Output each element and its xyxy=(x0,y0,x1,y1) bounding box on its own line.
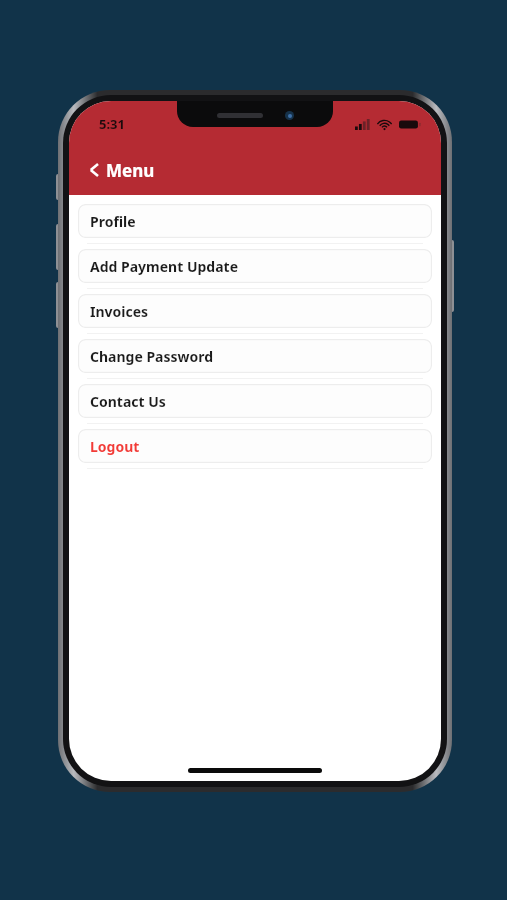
staticText: Contact Us xyxy=(90,392,166,411)
button[interactable]: Menu xyxy=(89,145,155,195)
other: Battery xyxy=(399,119,421,130)
staticText: Change Password xyxy=(90,347,214,366)
button[interactable]: Logout xyxy=(78,429,432,463)
button[interactable]: Contact Us xyxy=(78,384,432,418)
staticText: Profile xyxy=(90,212,136,231)
staticText: Add Payment Update xyxy=(90,257,239,276)
other: Cellular signal xyxy=(355,119,370,130)
button[interactable]: Profile xyxy=(78,204,432,238)
button[interactable]: Add Payment Update xyxy=(78,249,432,283)
staticText: Invoices xyxy=(90,302,149,321)
button[interactable]: Invoices xyxy=(78,294,432,328)
staticText: Logout xyxy=(90,437,140,456)
staticText: 5:31 xyxy=(99,115,125,133)
staticText: Menu xyxy=(106,159,155,182)
button[interactable]: Change Password xyxy=(78,339,432,373)
other: Wi-Fi xyxy=(377,119,392,130)
